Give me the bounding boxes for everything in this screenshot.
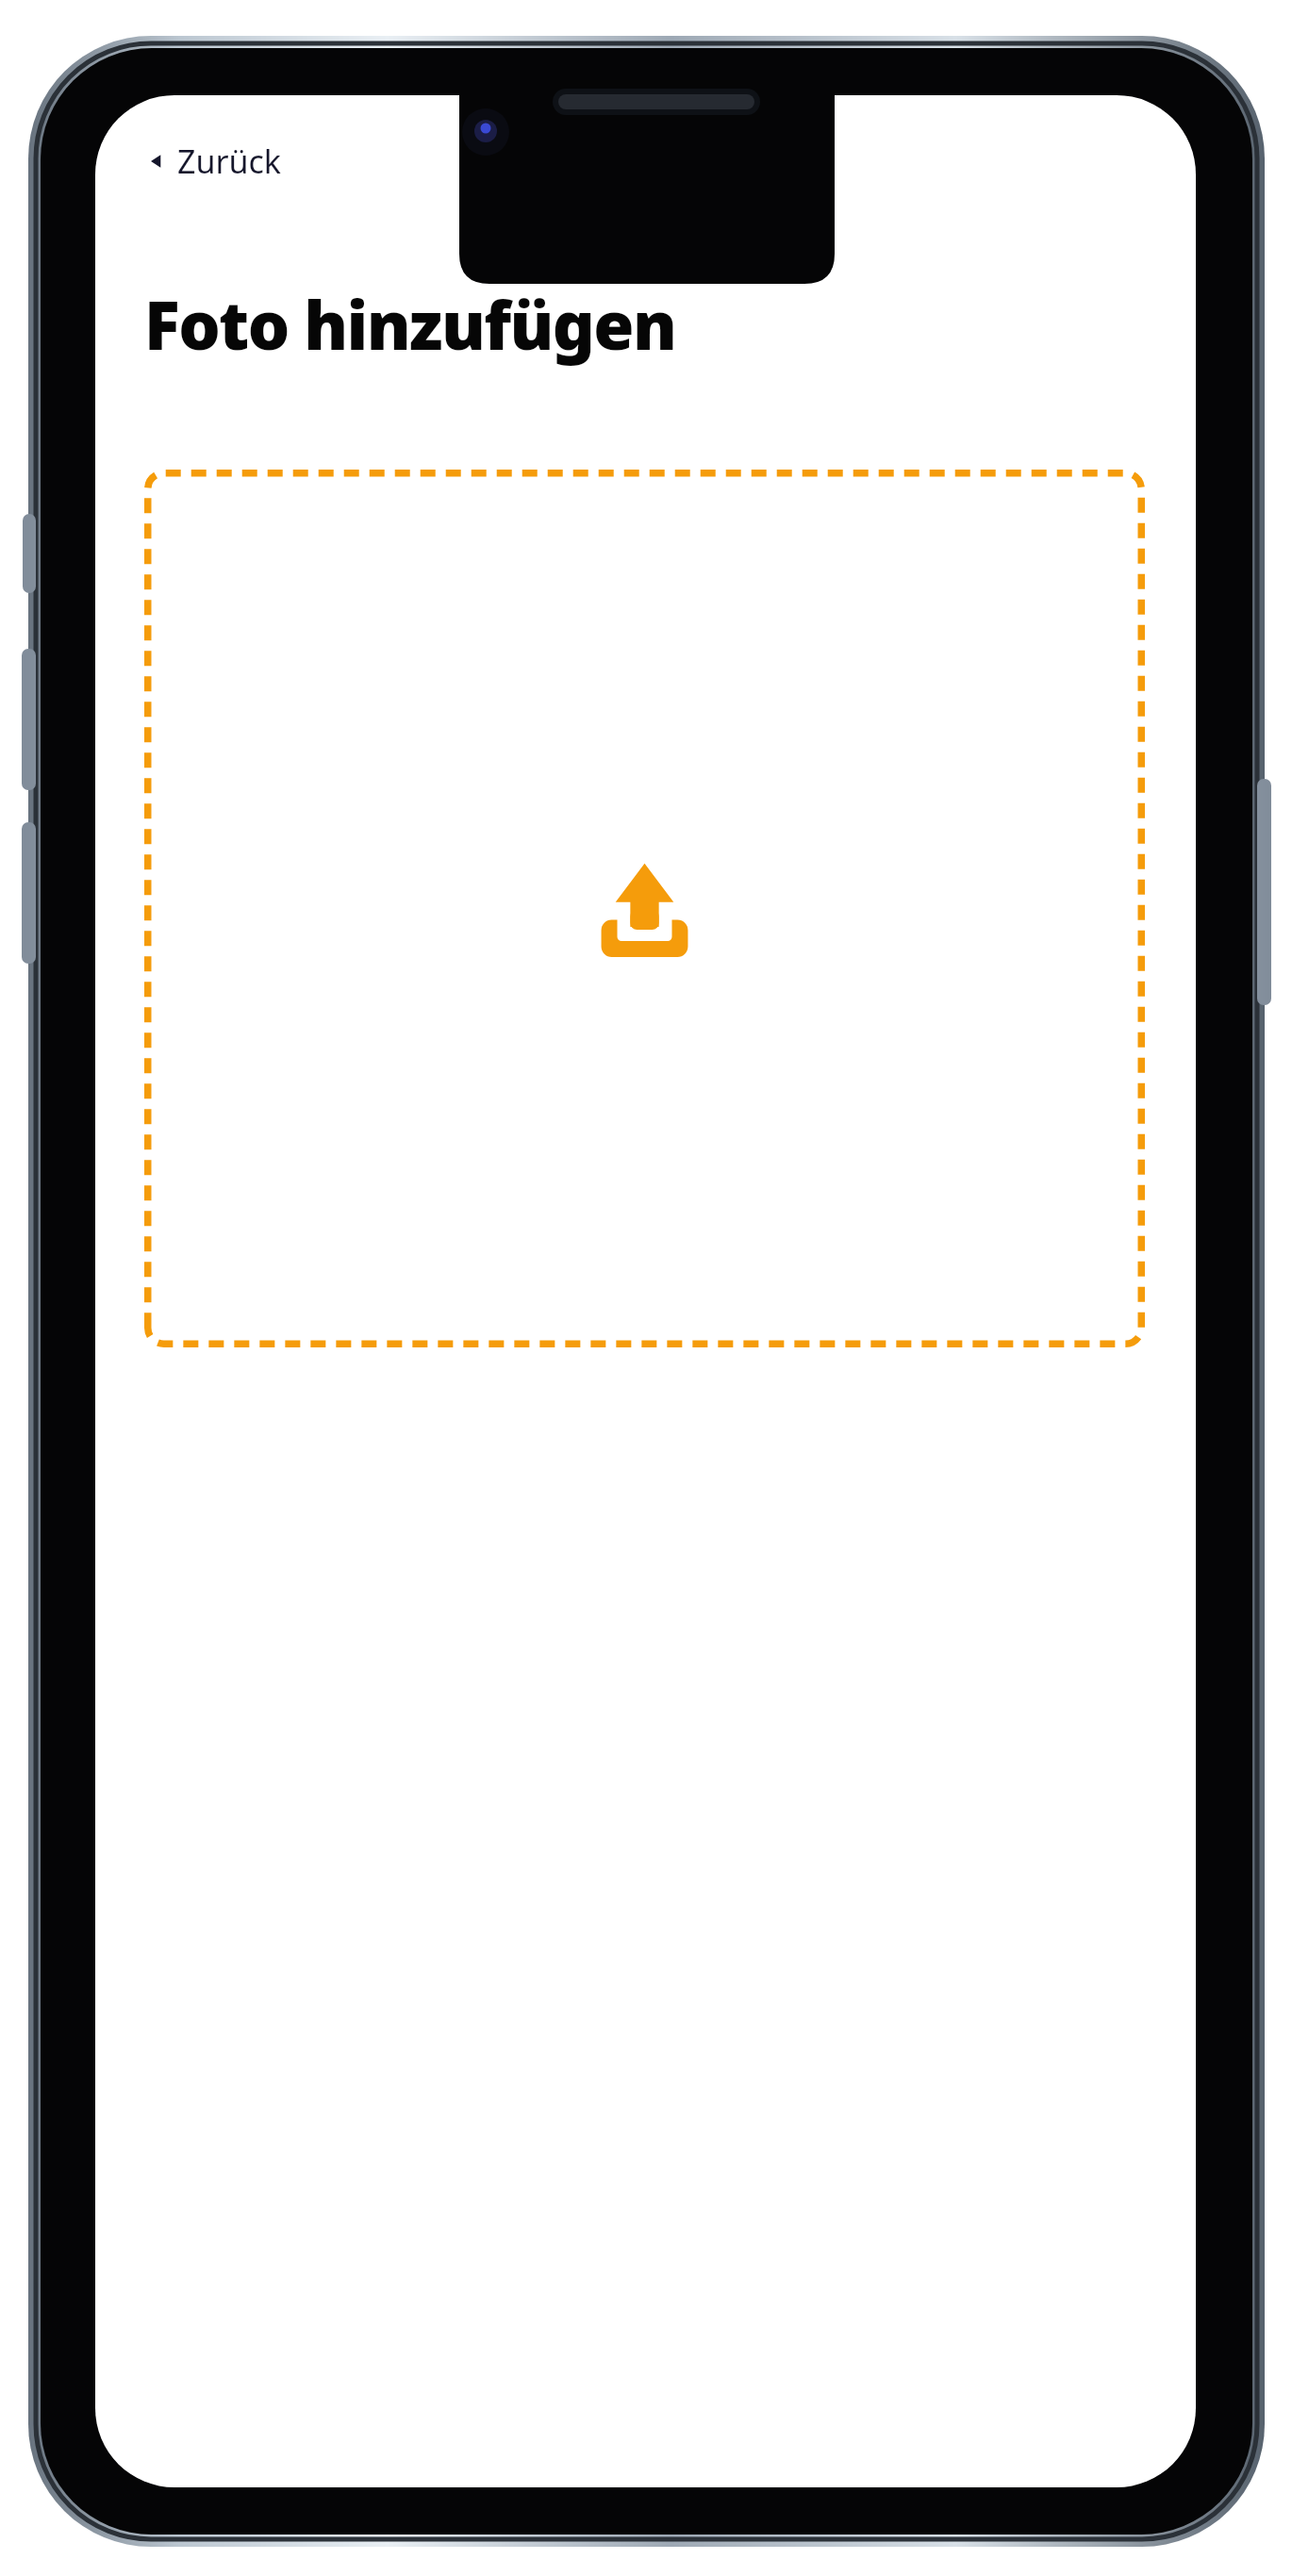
staticText: Foto hinzufügen — [144, 279, 676, 369]
button[interactable]: Foto hochladen — [144, 470, 1145, 1347]
button[interactable]: Zurück — [139, 131, 290, 191]
staticText: Zurück — [177, 140, 281, 183]
